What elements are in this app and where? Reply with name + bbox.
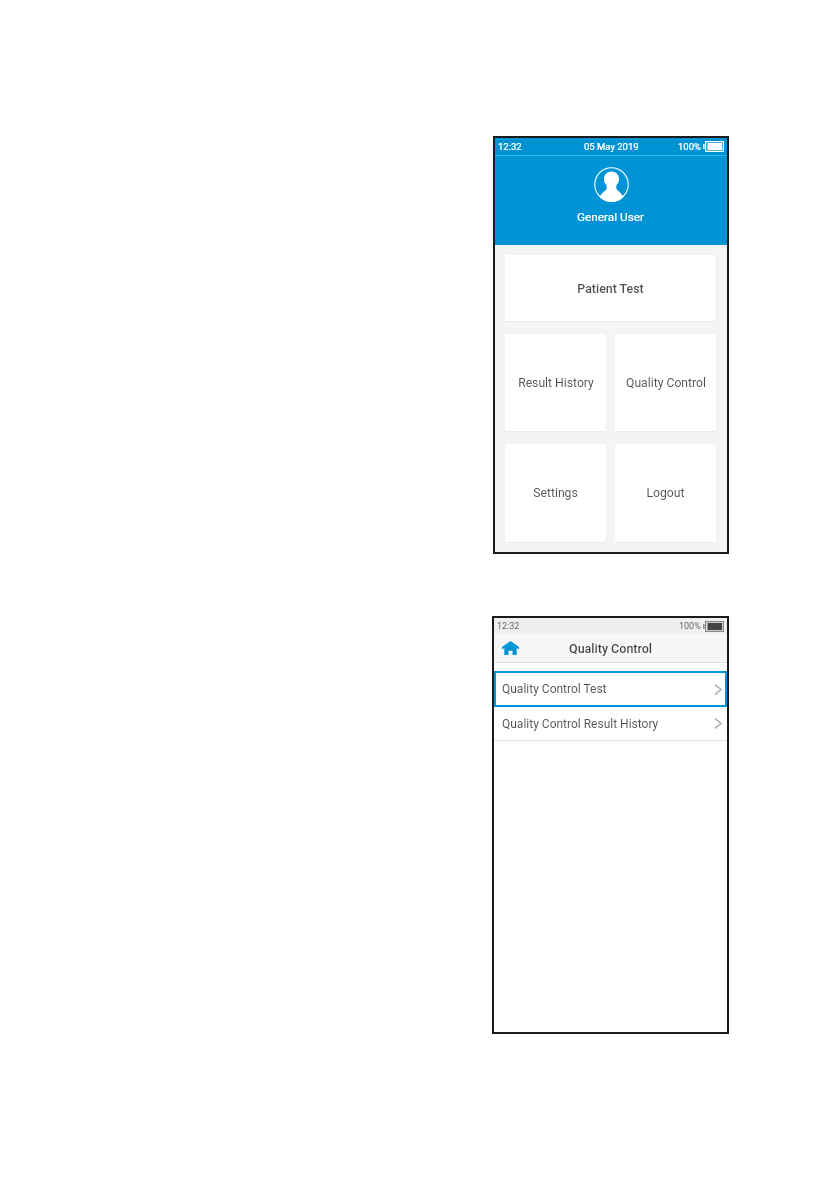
button[interactable]: Home — [499, 639, 521, 657]
staticText: Quality Control Test — [502, 682, 607, 696]
staticText: General User — [577, 210, 645, 224]
button[interactable]: Quality Control — [615, 334, 716, 431]
button[interactable]: Patient Test — [505, 255, 716, 321]
staticText: Quality Control — [626, 376, 706, 390]
button[interactable]: Logout — [615, 444, 716, 542]
staticText: Quality Control Result History — [502, 717, 659, 731]
staticText: 12:32 — [498, 141, 522, 152]
button[interactable]: Result History — [505, 334, 606, 431]
staticText: Settings — [533, 486, 578, 500]
staticText: 100% — [679, 621, 701, 632]
button[interactable]: Settings — [505, 444, 606, 542]
staticText: Patient Test — [577, 281, 644, 296]
staticText: Quality Control — [569, 641, 652, 656]
button[interactable]: Quality Control Test — [494, 671, 727, 707]
staticText: Result History — [518, 376, 594, 390]
button[interactable]: Quality Control Result History — [494, 707, 727, 740]
staticText: 05 May 2019 — [584, 141, 639, 152]
staticText: 100% — [678, 141, 701, 152]
staticText: Logout — [646, 486, 685, 500]
staticText: 12:32 — [497, 621, 520, 632]
